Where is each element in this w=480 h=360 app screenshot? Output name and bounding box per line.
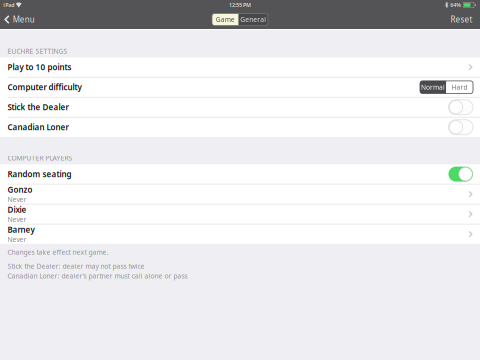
staticText: 64% xyxy=(450,1,461,9)
staticText: Never xyxy=(7,215,26,224)
staticText: Play to 10 points xyxy=(7,62,71,72)
staticText: Barney xyxy=(7,224,34,235)
staticText: Game xyxy=(216,15,235,24)
staticText: Random seating xyxy=(7,169,71,179)
staticText: Changes take effect next game. xyxy=(7,248,108,257)
button[interactable]: Menu xyxy=(0,10,40,29)
staticText: Hard xyxy=(452,83,468,92)
button[interactable]: Hard xyxy=(446,81,473,93)
staticText: COMPUTER PLAYERS xyxy=(7,153,72,162)
staticText: iPad xyxy=(3,1,14,9)
button[interactable]: Reset xyxy=(444,10,480,29)
button[interactable]: Gonzo xyxy=(0,184,480,204)
staticText: Dixie xyxy=(7,204,26,215)
staticText: Canadian Loner: dealer's partner must ca… xyxy=(7,271,187,280)
staticText: Stick the Dealer: dealer may not pass tw… xyxy=(7,262,144,271)
staticText: EUCHRE SETTINGS xyxy=(7,47,67,55)
staticText: Never xyxy=(7,235,26,244)
staticText: Canadian Loner xyxy=(7,122,68,132)
button[interactable]: Game xyxy=(212,13,239,25)
button[interactable]: Dixie xyxy=(0,204,480,224)
staticText: Reset xyxy=(450,14,472,25)
staticText: Gonzo xyxy=(7,184,32,195)
staticText: Menu xyxy=(13,14,35,25)
button[interactable]: Barney xyxy=(0,224,480,244)
button[interactable]: Canadian Loner xyxy=(0,117,480,137)
button[interactable]: Normal xyxy=(420,81,446,93)
button[interactable]: Stick the Dealer xyxy=(0,97,480,117)
button[interactable]: General xyxy=(239,13,268,25)
staticText: Never xyxy=(7,195,26,204)
staticText: 12:55 PM xyxy=(229,1,251,9)
staticText: General xyxy=(240,15,266,24)
button[interactable]: Random seating xyxy=(0,164,480,184)
staticText: Normal xyxy=(421,83,445,92)
staticText: Stick the Dealer xyxy=(7,102,68,112)
button[interactable]: Play to 10 points xyxy=(0,57,480,77)
staticText: Computer difficulty xyxy=(7,82,81,92)
